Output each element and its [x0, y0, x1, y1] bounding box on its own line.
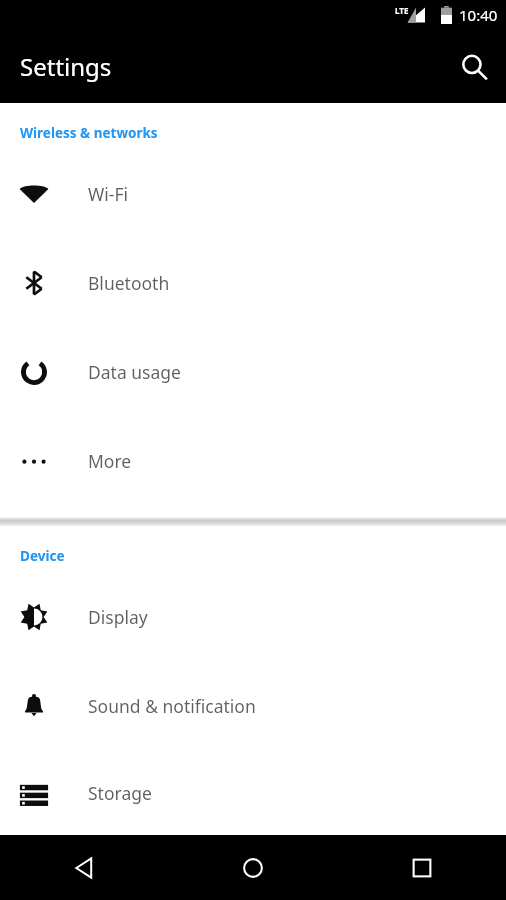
button[interactable]: Back — [0, 835, 168, 900]
staticText: Bluetooth — [88, 271, 170, 295]
button[interactable]: Recents — [337, 835, 506, 900]
staticText: Wireless & networks — [20, 124, 158, 142]
staticText: Data usage — [88, 360, 181, 384]
staticText: LTE — [395, 5, 409, 16]
staticText: Storage — [88, 781, 152, 805]
staticText: 10:40 — [459, 5, 498, 25]
staticText: More — [88, 449, 132, 473]
button[interactable]: Sound & notification — [0, 661, 506, 750]
button[interactable]: Display — [0, 572, 506, 661]
staticText: Display — [88, 605, 148, 629]
button[interactable]: More — [0, 416, 506, 505]
button[interactable]: Search — [450, 43, 498, 91]
button[interactable]: Wi-Fi — [0, 149, 506, 238]
staticText: Sound & notification — [88, 694, 256, 718]
button[interactable]: Data usage — [0, 327, 506, 416]
staticText: Wi-Fi — [88, 182, 129, 206]
button[interactable]: Home — [168, 835, 337, 900]
button[interactable]: Storage — [0, 750, 506, 835]
button[interactable]: Bluetooth — [0, 238, 506, 327]
staticText: Device — [20, 547, 65, 565]
staticText: Settings — [20, 50, 112, 83]
